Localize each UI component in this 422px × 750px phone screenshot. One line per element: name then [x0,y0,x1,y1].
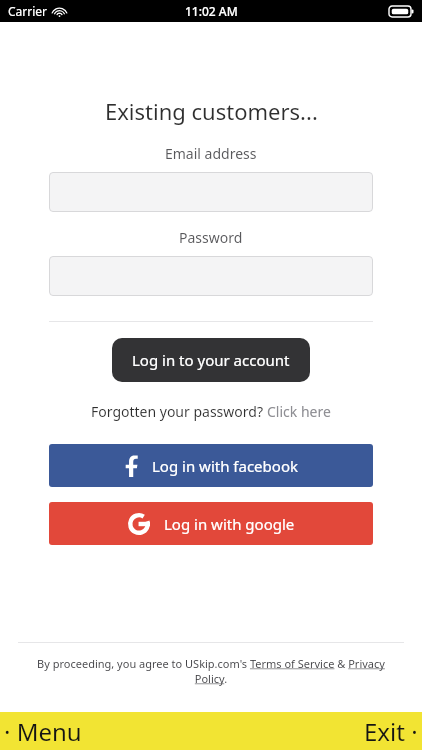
staticText: Forgotten your password? [91,402,267,421]
button[interactable]: Log in with facebook [49,444,373,487]
staticText: Log in with google [164,514,295,534]
staticText: Log in with facebook [152,456,298,476]
staticText: Log in to your account [132,350,290,370]
staticText: By proceeding, you agree to USkip.com's … [22,656,400,686]
button[interactable]: Log in with google [49,502,373,545]
button[interactable] [49,256,373,296]
staticText: · Menu [4,715,82,748]
staticText: Click here [267,402,331,421]
button[interactable]: By proceeding, you agree to USkip.com's … [22,656,400,686]
button[interactable]: Exit · [354,713,422,750]
staticText: Email address [165,144,257,163]
button[interactable]: · Menu [0,713,92,750]
button[interactable]: Forgotten your password? [91,402,331,421]
button[interactable] [49,172,373,212]
staticText: Carrier [8,3,48,19]
staticText: Exit · [364,715,418,748]
button[interactable]: Log in to your account [112,338,310,382]
staticText: Password [179,228,243,247]
staticText: 11:02 AM [185,3,238,19]
staticText: Existing customers... [105,96,318,126]
